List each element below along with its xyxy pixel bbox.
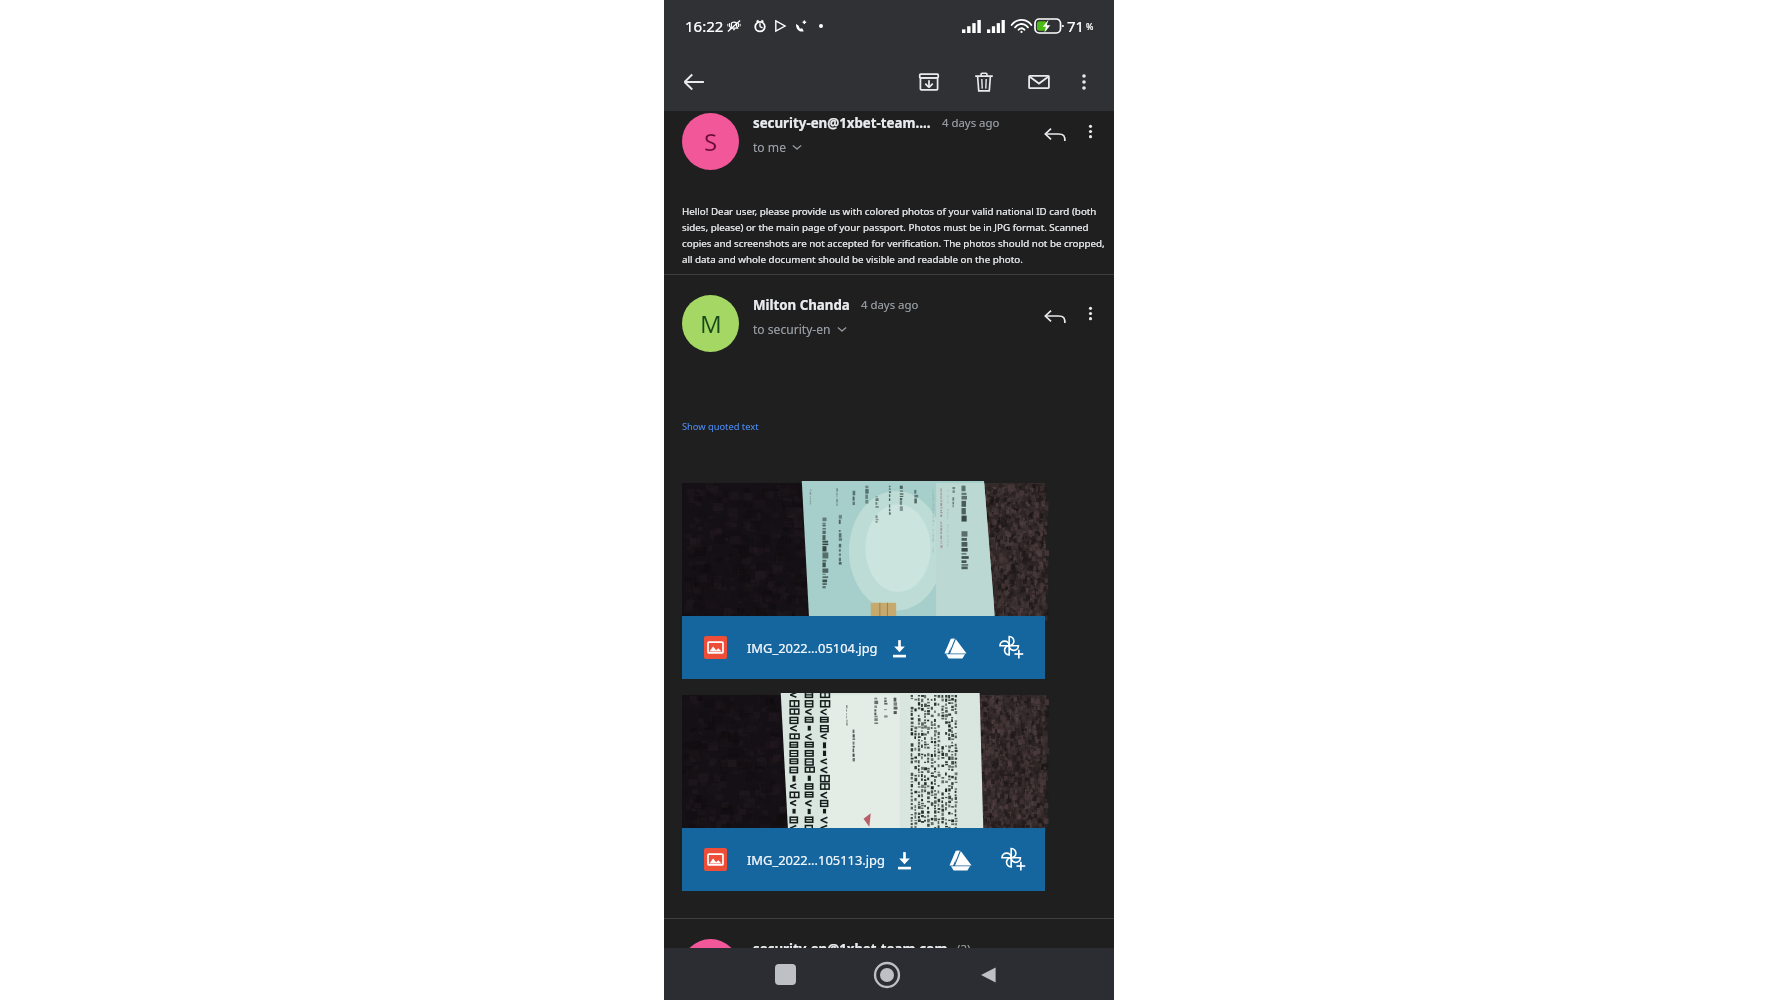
button[interactable]: Reply	[1036, 115, 1074, 153]
button[interactable]: Delete	[956, 59, 1011, 105]
staticText: 4 days ago	[861, 297, 919, 313]
staticText: IMG_2022...105113.jpg	[747, 851, 885, 869]
button[interactable]: Reply	[1036, 297, 1074, 335]
button[interactable]: Back	[672, 60, 716, 104]
button[interactable]: Back	[966, 952, 1011, 997]
staticText: Hello! Dear user, please provide us with…	[682, 205, 1105, 266]
staticText: M	[700, 307, 722, 340]
button[interactable]: IMG_2022...05104.jpg	[682, 483, 1045, 679]
button[interactable]: Save to Drive	[936, 629, 974, 667]
staticText: security-en@1xbet-team....	[753, 114, 931, 132]
button[interactable]: to me	[753, 139, 803, 155]
staticText: security-en@1xbet-team.com	[753, 940, 948, 958]
staticText: (2)	[957, 941, 971, 957]
staticText: Milton Chanda	[753, 296, 850, 314]
button[interactable]: S	[682, 113, 739, 170]
button[interactable]: Download	[880, 629, 918, 667]
staticText: to me	[753, 139, 786, 155]
button[interactable]: Save to Photos	[997, 841, 1030, 879]
button[interactable]: Show quoted text	[682, 420, 759, 433]
staticText: Show quoted text	[682, 420, 759, 433]
button[interactable]: More options	[1074, 115, 1106, 147]
staticText: IMG_2022...05104.jpg	[747, 639, 878, 657]
staticText: 16:22	[685, 16, 724, 36]
button[interactable]: Download	[885, 841, 923, 879]
button[interactable]: Mark unread	[1011, 59, 1067, 105]
staticText: to security-en	[753, 321, 831, 337]
button[interactable]: Archive	[901, 59, 956, 105]
button[interactable]: More options	[1074, 297, 1106, 329]
button[interactable]: M	[682, 295, 739, 352]
button[interactable]: Save to Photos	[992, 629, 1030, 667]
staticText: %	[1086, 20, 1094, 32]
button[interactable]: security-en@1xbet-team.com	[682, 939, 1114, 996]
button[interactable]: Save to Drive	[941, 841, 979, 879]
button[interactable]: Home	[864, 952, 909, 997]
staticText: 71	[1067, 16, 1085, 36]
staticText: 4 days ago	[942, 115, 1000, 131]
button[interactable]: to security-en	[753, 321, 848, 337]
button[interactable]: More options	[1067, 59, 1101, 105]
button[interactable]: Recents	[763, 952, 808, 997]
staticText: S	[704, 125, 718, 158]
button[interactable]: IMG_2022...105113.jpg	[682, 695, 1045, 891]
